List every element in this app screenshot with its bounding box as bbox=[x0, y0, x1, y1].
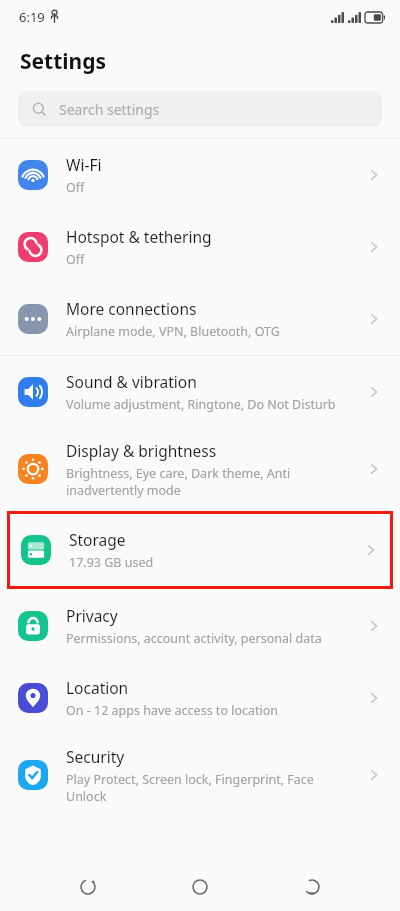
button[interactable]: Home bbox=[176, 863, 224, 911]
button[interactable]: Hotspot & tethering bbox=[0, 211, 400, 283]
staticText: Wi-Fi bbox=[66, 154, 102, 175]
staticText: Volume adjustment, Ringtone, Do Not Dist… bbox=[66, 396, 336, 413]
button[interactable]: Location bbox=[0, 662, 400, 734]
staticText: Search settings bbox=[59, 100, 160, 119]
button[interactable]: Search settings bbox=[18, 91, 382, 127]
staticText: Permissions, account activity, personal … bbox=[66, 630, 322, 647]
staticText: Off bbox=[66, 179, 85, 196]
staticText: Play Protect, Screen lock, Fingerprint, … bbox=[66, 771, 314, 805]
button[interactable]: Recents bbox=[288, 863, 336, 911]
button[interactable]: Display & brightness bbox=[0, 428, 400, 510]
staticText: Airplane mode, VPN, Bluetooth, OTG bbox=[66, 323, 280, 340]
staticText: 17.93 GB used bbox=[69, 554, 154, 571]
button[interactable]: Wi-Fi bbox=[0, 139, 400, 211]
button[interactable]: Storage bbox=[10, 514, 390, 586]
staticText: Off bbox=[66, 251, 85, 268]
staticText: Settings bbox=[20, 47, 107, 76]
staticText: Security bbox=[66, 746, 125, 767]
staticText: 6:19 bbox=[19, 8, 45, 26]
button[interactable]: Privacy bbox=[0, 590, 400, 662]
button[interactable]: Security bbox=[0, 734, 400, 816]
staticText: On - 12 apps have access to location bbox=[66, 702, 279, 719]
staticText: Privacy bbox=[66, 605, 118, 626]
button[interactable]: Sound & vibration bbox=[0, 356, 400, 428]
staticText: Brightness, Eye care, Dark theme, Anti i… bbox=[66, 465, 291, 499]
button[interactable]: More connections bbox=[0, 283, 400, 355]
staticText: Display & brightness bbox=[66, 440, 217, 461]
staticText: Hotspot & tethering bbox=[66, 226, 212, 247]
staticText: Location bbox=[66, 677, 129, 698]
staticText: Storage bbox=[69, 529, 126, 550]
staticText: Sound & vibration bbox=[66, 371, 197, 392]
button[interactable]: Back bbox=[64, 863, 112, 911]
staticText: More connections bbox=[66, 298, 197, 319]
